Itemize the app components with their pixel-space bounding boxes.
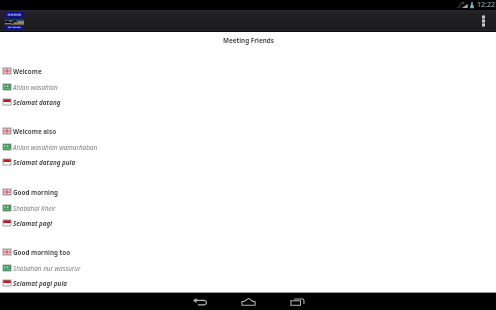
staticText: Good morning bbox=[13, 188, 58, 197]
button[interactable]: Back bbox=[175, 293, 224, 310]
staticText: Good morning too bbox=[13, 248, 71, 257]
staticText: Meeting Friends bbox=[223, 36, 274, 45]
staticText: 12:22 bbox=[477, 0, 495, 10]
staticText: Welcome also bbox=[13, 127, 57, 136]
staticText: Selamat pagi pula bbox=[13, 279, 68, 288]
staticText: Shabahan nur wassurur bbox=[13, 264, 81, 273]
button[interactable]: Recent apps bbox=[273, 293, 322, 310]
button[interactable]: Good morning too bbox=[0, 247, 496, 288]
staticText: Ahlan wasahlan wamarhaban bbox=[13, 143, 98, 152]
staticText: Selamat pagi bbox=[13, 219, 53, 228]
button[interactable]: More options bbox=[471, 10, 496, 32]
button[interactable]: Good morning bbox=[0, 187, 496, 228]
button[interactable]: App home bbox=[5, 12, 24, 30]
staticText: Selamat datang bbox=[13, 98, 61, 107]
staticText: Shabahal Kheir bbox=[13, 204, 56, 213]
staticText: Welcome bbox=[13, 67, 42, 76]
button[interactable]: Welcome bbox=[0, 66, 496, 107]
button[interactable]: Home bbox=[224, 293, 273, 310]
button[interactable]: Welcome also bbox=[0, 126, 496, 167]
staticText: Ahlan wasahlan bbox=[13, 83, 58, 92]
staticText: Selamat datang pula bbox=[13, 158, 76, 167]
